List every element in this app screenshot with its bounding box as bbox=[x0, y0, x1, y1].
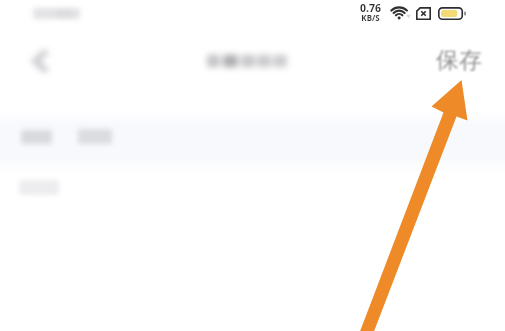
button[interactable]: Profile field bbox=[0, 172, 505, 218]
staticText: KB/S bbox=[361, 12, 380, 23]
staticText: 保存 bbox=[436, 46, 482, 75]
staticText: 0.76 bbox=[360, 1, 381, 15]
other: Wi-Fi bbox=[390, 6, 412, 20]
other: Battery bbox=[438, 7, 466, 20]
button[interactable]: Profile field bbox=[0, 116, 505, 168]
other: No SIM bbox=[416, 7, 431, 20]
button[interactable]: 保存 bbox=[436, 46, 482, 75]
button[interactable]: Back bbox=[16, 38, 62, 84]
